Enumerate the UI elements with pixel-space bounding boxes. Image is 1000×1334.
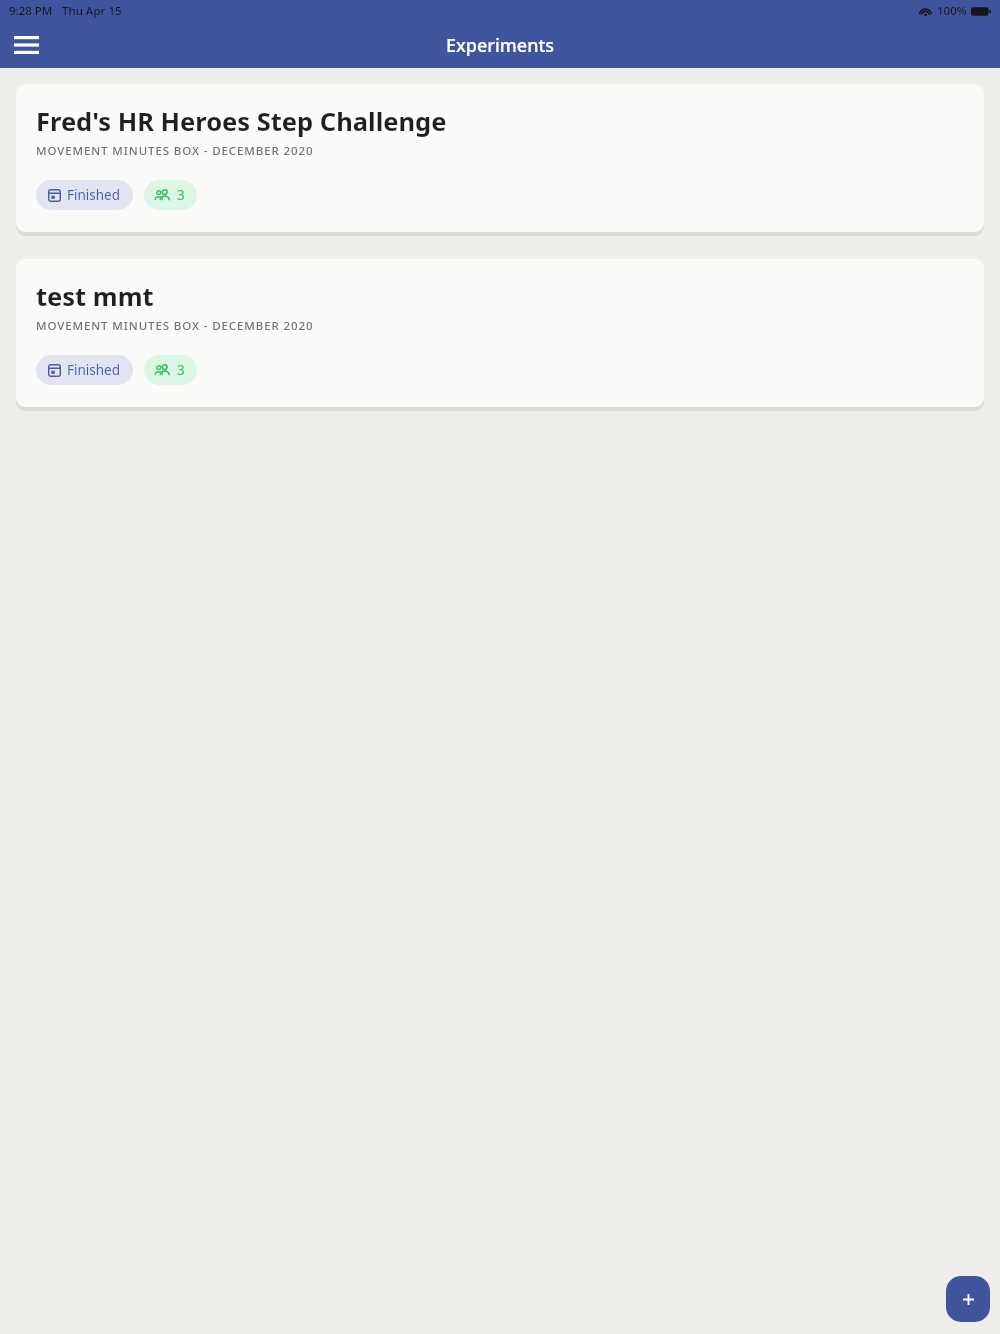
button[interactable]: Finished: [36, 180, 133, 210]
button[interactable]: Create experiment: [946, 1276, 990, 1322]
staticText: Finished: [67, 186, 121, 204]
staticText: Fred's HR Heroes Step Challenge: [36, 104, 447, 139]
button[interactable]: test mmt: [16, 259, 984, 407]
staticText: MOVEMENT MINUTES BOX - DECEMBER 2020: [36, 143, 314, 159]
staticText: Thu Apr 15: [62, 3, 122, 19]
staticText: MOVEMENT MINUTES BOX - DECEMBER 2020: [36, 318, 314, 334]
button[interactable]: 3: [144, 355, 197, 385]
button[interactable]: Finished: [36, 355, 133, 385]
staticText: test mmt: [36, 279, 154, 314]
button[interactable]: 3: [144, 180, 197, 210]
staticText: 3: [177, 361, 185, 379]
button[interactable]: Open navigation menu: [5, 24, 47, 66]
staticText: Experiments: [446, 33, 555, 58]
staticText: 3: [177, 186, 185, 204]
staticText: Finished: [67, 361, 121, 379]
staticText: 9:28 PM: [9, 3, 53, 19]
staticText: 100%: [937, 3, 967, 19]
button[interactable]: Fred's HR Heroes Step Challenge: [16, 84, 984, 232]
